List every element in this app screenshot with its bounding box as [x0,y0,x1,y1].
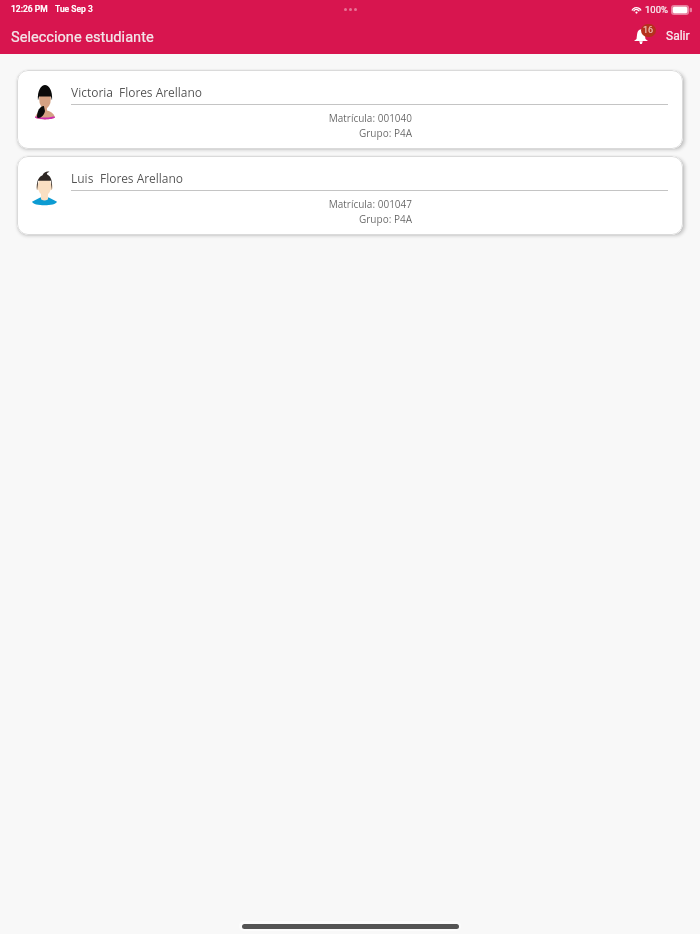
staticText: Grupo: P4A [71,126,412,140]
staticText: Salir [666,29,690,43]
staticText: Seleccione estudiante [11,28,154,45]
staticText: Flores Arellano [119,84,203,100]
staticText: Flores Arellano [100,170,184,186]
button[interactable]: Notificaciones [631,23,655,49]
staticText: Luis [71,170,94,186]
staticText: 100% [645,4,668,15]
button[interactable]: Luis [17,156,683,235]
staticText: 12:26 PM [11,4,48,14]
staticText: 16 [643,25,654,36]
staticText: Matrícula: 001047 [71,197,412,211]
staticText: Grupo: P4A [71,212,412,226]
button[interactable]: Victoria [17,70,683,149]
staticText: Victoria [71,84,113,100]
button[interactable]: Salir [665,25,691,47]
staticText: Tue Sep 3 [55,4,93,14]
staticText: Matrícula: 001040 [71,111,412,125]
